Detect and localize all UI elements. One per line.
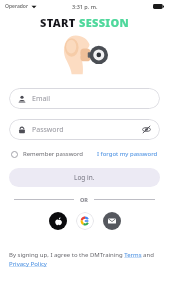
- staticText: Remember password: [23, 150, 84, 158]
- button[interactable]: Sign in with Email: [103, 212, 121, 230]
- staticText: Password: [32, 125, 64, 135]
- button[interactable]: I forgot my password: [97, 148, 158, 160]
- other: Show password: [142, 125, 151, 134]
- staticText: I forgot my password: [97, 150, 158, 158]
- button[interactable]: Sign in with Google: [76, 212, 94, 230]
- button[interactable]: Email: [9, 88, 160, 109]
- staticText: 3:31 p. m.: [72, 3, 98, 10]
- staticText: Email: [32, 94, 50, 104]
- staticText: Log in.: [74, 173, 95, 182]
- button[interactable]: By signing up, I agree to the DMTraining…: [9, 251, 160, 268]
- staticText: Operador: [5, 3, 29, 10]
- staticText: START: [40, 15, 79, 30]
- staticText: SESSION: [79, 15, 129, 30]
- button[interactable]: Password: [9, 119, 160, 140]
- button[interactable]: Log in.: [9, 168, 160, 187]
- button[interactable]: Remember password: [11, 148, 84, 160]
- staticText: OR: [80, 196, 88, 203]
- button[interactable]: Sign in with Apple: [49, 212, 67, 230]
- staticText: By signing up, I agree to the DMTraining…: [9, 251, 160, 268]
